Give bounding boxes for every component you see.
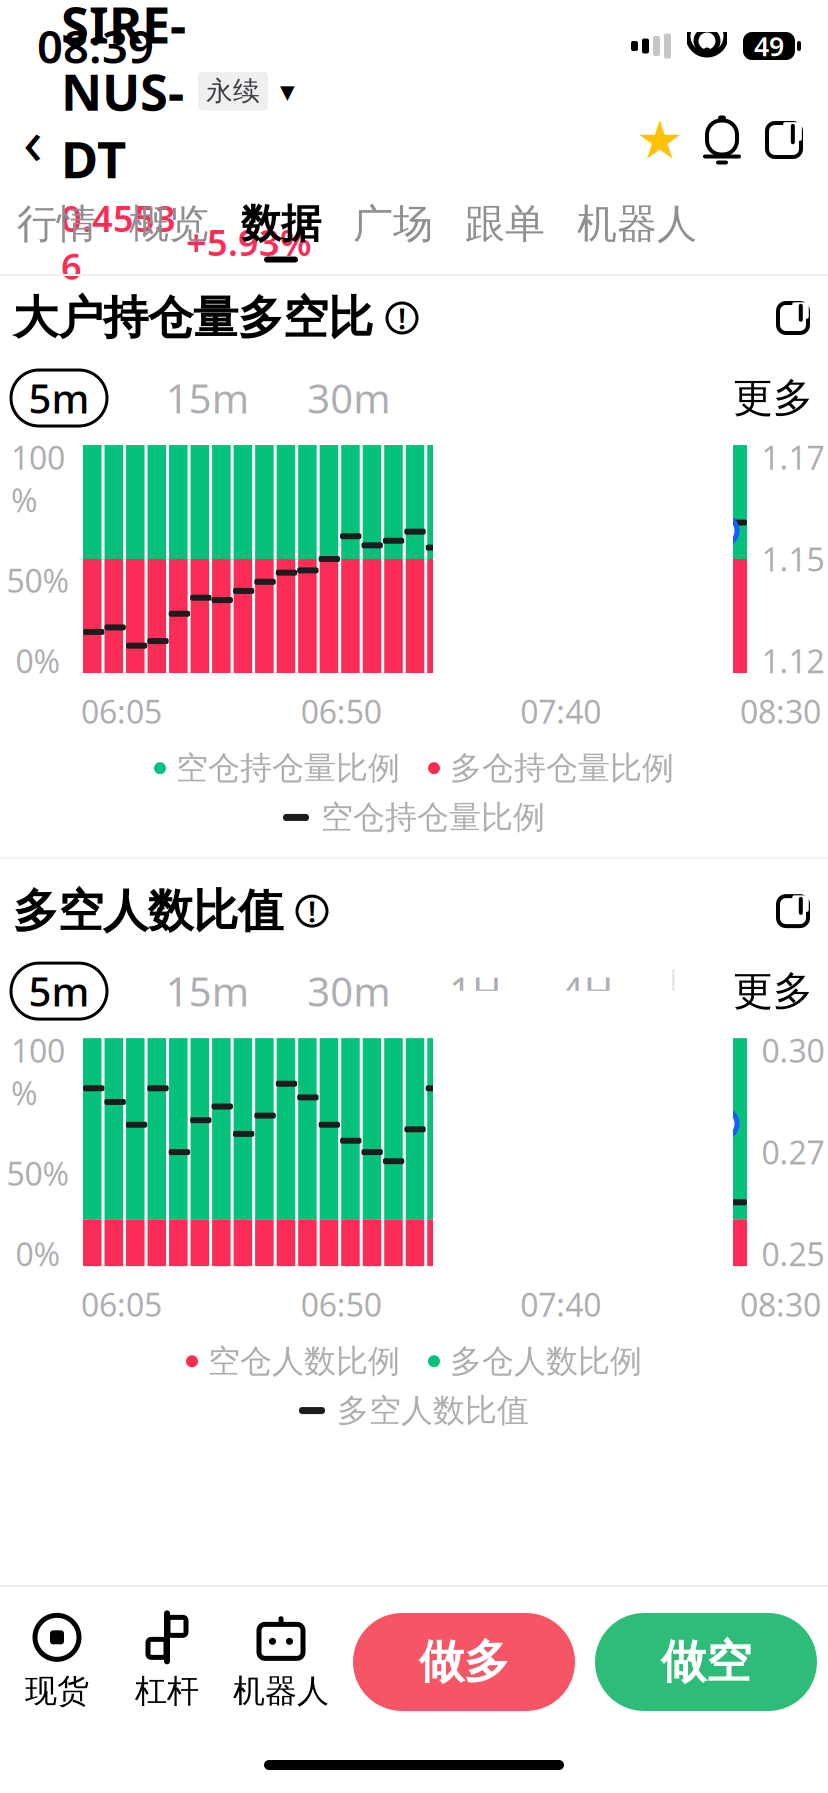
staticText: 5m <box>28 964 89 1018</box>
staticText: 0.27 <box>761 1131 824 1173</box>
staticText: 1H <box>449 964 502 1018</box>
staticText: 0% <box>15 639 60 682</box>
staticText: 100% <box>11 436 65 521</box>
staticText: 50% <box>6 1152 69 1195</box>
button[interactable]: 现货 <box>11 1610 103 1714</box>
button[interactable]: 机器人 <box>561 188 713 274</box>
button[interactable]: 广场 <box>337 188 449 274</box>
button[interactable]: 分享 <box>753 109 815 171</box>
staticText: 06:50 <box>301 690 382 732</box>
staticText: 0.45536 <box>61 194 176 290</box>
staticText: SIRENUSDT <box>61 0 186 192</box>
staticText: 07:40 <box>520 1283 601 1326</box>
button[interactable]: 更多 <box>733 370 813 426</box>
button[interactable]: 5m <box>11 963 107 1019</box>
staticText: 现货 <box>25 1671 89 1711</box>
button[interactable]: 分享图表 <box>765 290 821 346</box>
button[interactable]: 跟单 <box>449 188 561 274</box>
button[interactable]: 15m <box>166 370 249 426</box>
staticText: 跟单 <box>465 199 545 248</box>
staticText: 多空人数比值 <box>337 1391 529 1430</box>
staticText: 做多 <box>419 1634 509 1690</box>
staticText: 08:30 <box>740 1283 821 1326</box>
staticText: 0% <box>15 1233 60 1275</box>
staticText: ▾ <box>280 74 295 108</box>
staticText: ‹ <box>23 97 43 182</box>
staticText: 更多 <box>733 373 813 422</box>
button[interactable]: 4H <box>561 963 614 1019</box>
staticText: 15m <box>166 371 249 424</box>
button[interactable]: 30m <box>307 370 390 426</box>
button[interactable]: 提醒 <box>691 109 753 171</box>
staticText: 4H <box>561 964 614 1018</box>
staticText: 概览 <box>129 199 209 248</box>
staticText: 07:40 <box>520 690 601 732</box>
staticText: 50% <box>6 559 69 601</box>
staticText: 大户持仓量多空比 <box>13 290 373 346</box>
staticText: 杠杆 <box>135 1671 199 1711</box>
button[interactable]: 做多 <box>353 1613 575 1711</box>
button[interactable]: 机器人 <box>231 1610 331 1714</box>
staticText: 广场 <box>353 199 433 248</box>
staticText: 多空人数比值 <box>13 883 283 939</box>
staticText: 49 <box>754 28 784 64</box>
staticText: 15m <box>166 964 249 1018</box>
staticText: 06:05 <box>81 1283 162 1326</box>
staticText: 30m <box>307 964 390 1018</box>
staticText: 08:39 <box>37 16 154 76</box>
staticText: 多仓持仓量比例 <box>450 748 674 788</box>
button[interactable]: 返回 <box>5 104 61 176</box>
staticText: 做空 <box>661 1634 751 1690</box>
button[interactable]: 30m <box>307 963 390 1019</box>
staticText: ! <box>398 298 406 337</box>
staticText: 06:05 <box>81 690 162 732</box>
staticText: 08:30 <box>740 690 821 732</box>
button[interactable]: 15m <box>166 963 249 1019</box>
button[interactable]: 杠杆 <box>121 1610 213 1714</box>
staticText: 1.12 <box>761 639 824 682</box>
staticText: 0.25 <box>761 1233 824 1275</box>
staticText: 100% <box>11 1029 65 1114</box>
button[interactable]: 概览 <box>113 188 225 274</box>
staticText: ★ <box>636 110 684 170</box>
staticText: 行情 <box>17 199 97 248</box>
staticText: 1.17 <box>761 436 824 478</box>
staticText: 06:50 <box>301 1283 382 1326</box>
button[interactable]: 行情 <box>1 188 113 274</box>
staticText: 空仓持仓量比例 <box>176 748 400 788</box>
button[interactable]: 分享图表 <box>765 883 821 939</box>
button[interactable]: 数据 <box>225 188 337 274</box>
staticText: 1.15 <box>761 538 824 580</box>
staticText: 更多 <box>733 966 813 1016</box>
staticText: 多空人数比值: 0.26 <box>455 1290 681 1385</box>
button[interactable]: 更多 <box>733 963 813 1019</box>
button[interactable]: 做空 <box>595 1613 817 1711</box>
staticText: 30m <box>307 371 390 424</box>
staticText: 空仓人数比例 <box>208 1342 400 1381</box>
staticText: +5.93% <box>186 218 312 266</box>
staticText: 空仓持仓量比例 <box>321 798 545 837</box>
button[interactable]: 5m <box>11 370 107 426</box>
staticText: ! <box>308 892 316 931</box>
staticText: 永续 <box>206 75 260 108</box>
staticText: 数据 <box>241 199 321 248</box>
staticText: 机器人 <box>233 1671 329 1711</box>
staticText: 多仓人数比例 <box>450 1342 642 1381</box>
button[interactable]: 收藏 <box>629 109 691 171</box>
staticText: 机器人 <box>577 199 697 248</box>
staticText: 5m <box>28 371 89 424</box>
staticText: 0.30 <box>761 1029 824 1072</box>
staticText: 多空持仓量比值: 1.15 <box>455 661 671 753</box>
button[interactable]: 1H <box>449 963 502 1019</box>
